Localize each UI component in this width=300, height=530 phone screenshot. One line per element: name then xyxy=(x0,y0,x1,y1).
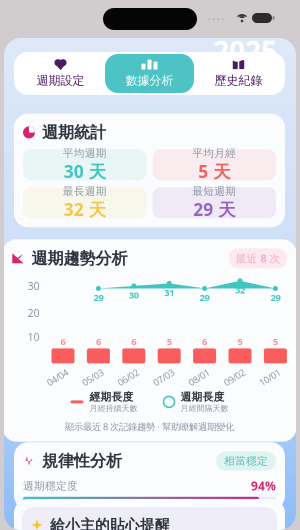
staticText: 29 xyxy=(93,291,103,304)
staticText: 週期長度 xyxy=(180,390,224,403)
staticText: 相當穩定 xyxy=(224,454,268,468)
staticText: 30 天 xyxy=(64,160,106,183)
staticText: 20 xyxy=(27,306,39,320)
staticText: 05/03 xyxy=(81,371,104,384)
staticText: 5 xyxy=(237,335,242,348)
staticText: 最長週期 xyxy=(63,185,107,198)
staticText: 給小主的貼心提醒 xyxy=(50,516,170,530)
staticText: 10/01 xyxy=(258,371,281,384)
staticText: 經期長度 xyxy=(89,390,133,403)
staticText: 29 xyxy=(200,291,210,304)
button[interactable]: 週期設定 xyxy=(16,54,105,93)
staticText: 29 xyxy=(270,291,280,304)
staticText: 08/01 xyxy=(187,371,210,384)
staticText: 04/04 xyxy=(46,371,69,384)
staticText: 5 xyxy=(167,335,172,348)
staticText: 週期設定 xyxy=(36,73,84,88)
staticText: 週期穩定度 xyxy=(23,479,78,492)
staticText: 規律性分析 xyxy=(42,451,122,471)
button[interactable]: 歷史紀錄 xyxy=(194,54,283,93)
staticText: 32 xyxy=(235,284,245,296)
staticText: 32 天 xyxy=(64,198,106,221)
staticText: 6 xyxy=(131,335,136,348)
staticText: 06/02 xyxy=(117,371,140,384)
staticText: 6 xyxy=(96,335,101,348)
staticText: 5 天 xyxy=(198,160,230,183)
staticText: 09/02 xyxy=(223,371,246,384)
staticText: 31 xyxy=(164,286,174,299)
staticText: 29 天 xyxy=(193,198,235,221)
staticText: 顯示最近 8 次記錄趨勢 · 幫助瞭解週期變化 xyxy=(65,420,234,433)
staticText: 最短週期 xyxy=(192,185,236,198)
staticText: 2025 xyxy=(213,32,277,70)
staticText: 5 xyxy=(273,335,278,348)
button[interactable]: 數據分析 xyxy=(105,54,194,93)
staticText: 數據分析 xyxy=(125,73,173,88)
staticText: 10 xyxy=(27,330,39,344)
staticText: 週期趨勢分析 xyxy=(31,248,127,268)
staticText: 平均月經 xyxy=(192,147,236,160)
staticText: 歷史紀錄 xyxy=(214,73,262,88)
staticText: 平均週期 xyxy=(63,147,107,160)
staticText: 週期統計 xyxy=(42,123,106,142)
staticText: 6 xyxy=(202,335,207,348)
staticText: 94% xyxy=(251,478,276,494)
staticText: 30 xyxy=(27,279,39,293)
staticText: 月經持續天數 xyxy=(89,403,137,413)
staticText: 月經間隔天數 xyxy=(180,403,228,413)
staticText: 6 xyxy=(60,335,65,348)
staticText: 30 xyxy=(129,289,139,301)
staticText: 07/03 xyxy=(152,371,175,384)
staticText: 最近 8 次 xyxy=(235,251,280,265)
